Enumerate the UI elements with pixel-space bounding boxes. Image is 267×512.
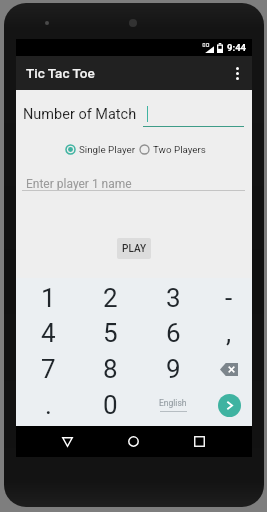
- button[interactable]: Back: [55, 429, 80, 454]
- staticText: 7: [41, 354, 56, 384]
- button[interactable]: 8: [92, 353, 128, 385]
- button[interactable]: Enter: [218, 394, 241, 417]
- staticText: .: [45, 390, 52, 420]
- button[interactable]: 4: [30, 317, 66, 349]
- button[interactable]: Two Players: [139, 144, 206, 155]
- button[interactable]: Recents: [187, 429, 212, 454]
- button[interactable]: 2: [92, 282, 128, 314]
- button[interactable]: English: [145, 389, 201, 421]
- staticText: Single Player: [79, 144, 136, 155]
- button[interactable]: .: [30, 389, 66, 421]
- staticText: 6: [166, 318, 181, 348]
- staticText: Number of Match: [23, 106, 137, 123]
- button[interactable]: Home: [121, 429, 146, 454]
- staticText: English: [159, 398, 187, 408]
- staticText: 2: [103, 283, 118, 313]
- staticText: 9:44: [227, 42, 247, 53]
- staticText: 5: [103, 318, 118, 348]
- staticText: 0: [103, 390, 118, 420]
- staticText: 1: [41, 283, 56, 313]
- staticText: -: [225, 283, 233, 313]
- button[interactable]: ,: [211, 317, 247, 349]
- staticText: PLAY: [122, 243, 147, 255]
- button[interactable]: Backspace: [211, 353, 247, 385]
- staticText: 3: [166, 283, 181, 313]
- button[interactable]: 0: [92, 389, 128, 421]
- button[interactable]: -: [211, 282, 247, 314]
- staticText: 8: [103, 354, 118, 384]
- staticText: 9: [166, 354, 181, 384]
- staticText: ,: [226, 318, 232, 348]
- button[interactable]: 6: [155, 317, 191, 349]
- button[interactable]: PLAY: [117, 238, 151, 259]
- button[interactable]: 5: [92, 317, 128, 349]
- button[interactable]: [143, 102, 244, 127]
- button[interactable]: Single Player: [65, 144, 136, 155]
- button[interactable]: 3: [155, 282, 191, 314]
- staticText: Tic Tac Toe: [26, 65, 95, 81]
- staticText: Two Players: [153, 144, 206, 155]
- button[interactable]: 1: [30, 282, 66, 314]
- staticText: Enter player 1 name: [26, 177, 132, 191]
- staticText: 4: [41, 318, 56, 348]
- button[interactable]: More options: [222, 58, 252, 88]
- button[interactable]: 9: [155, 353, 191, 385]
- button[interactable]: 7: [30, 353, 66, 385]
- button[interactable]: Enter player 1 name: [22, 176, 245, 191]
